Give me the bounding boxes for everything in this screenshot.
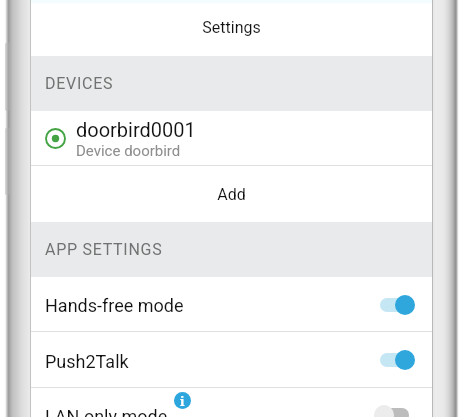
staticText: Settings: [202, 18, 261, 37]
button[interactable]: Push2Talk: [31, 332, 432, 388]
staticText: Device doorbird: [76, 142, 181, 160]
staticText: Push2Talk: [45, 351, 129, 372]
button[interactable]: Hands-free mode: [31, 277, 432, 332]
button[interactable]: Switch on: [380, 349, 409, 371]
button[interactable]: doorbird0001: [31, 111, 432, 166]
button[interactable]: Switch off: [380, 404, 409, 417]
staticText: doorbird0001: [76, 118, 196, 141]
button[interactable]: Settings: [31, 4, 432, 56]
staticText: APP SETTINGS: [45, 240, 163, 259]
staticText: DEVICES: [45, 74, 114, 93]
staticText: Hands-free mode: [45, 295, 184, 316]
staticText: i: [180, 392, 185, 409]
staticText: LAN only mode: [45, 406, 168, 417]
button[interactable]: Info about LAN only mode: [174, 392, 191, 409]
button[interactable]: Add: [31, 166, 432, 222]
button[interactable]: Switch on: [380, 294, 409, 316]
staticText: Add: [217, 185, 246, 204]
button[interactable]: LAN only mode: [31, 387, 432, 417]
